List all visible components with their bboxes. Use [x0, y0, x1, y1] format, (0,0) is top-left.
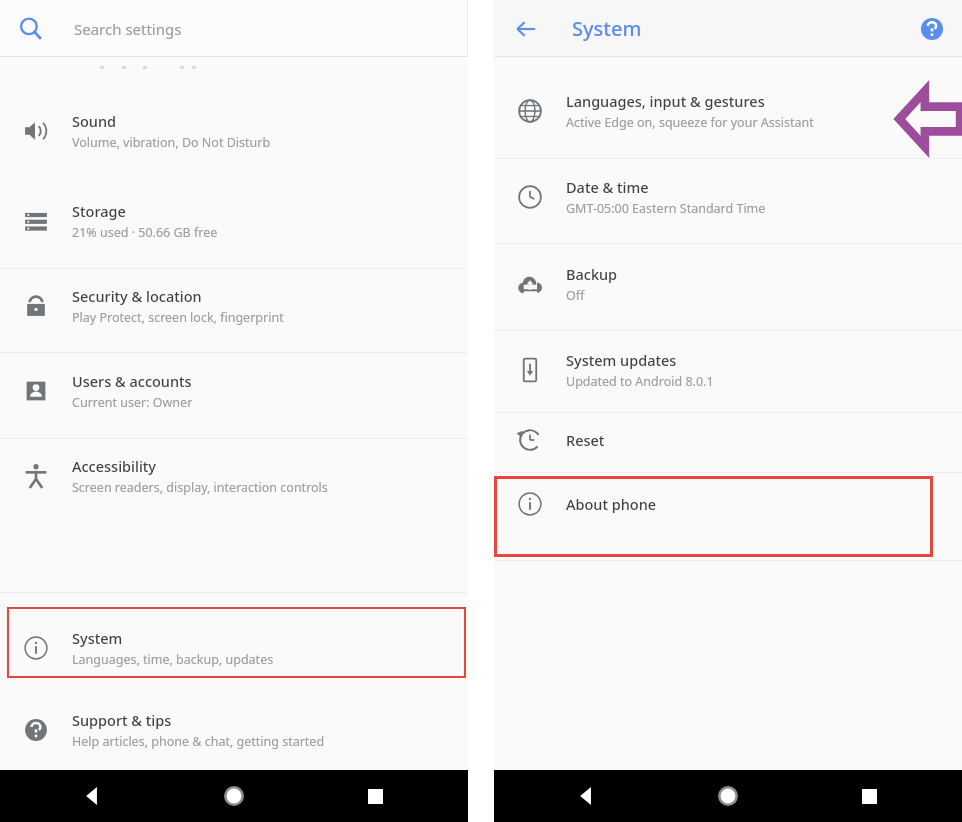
staticText: Volume, vibration, Do Not Disturb — [72, 134, 271, 151]
button[interactable]: Home — [705, 773, 751, 819]
button[interactable]: Sound — [0, 95, 468, 167]
staticText: Updated to Android 8.0.1 — [566, 373, 714, 390]
staticText: 21% used · 50.66 GB free — [72, 224, 218, 241]
staticText: About phone — [566, 494, 657, 514]
button[interactable]: About phone — [494, 476, 962, 532]
button[interactable]: Back — [564, 773, 610, 819]
button[interactable]: Security & location — [0, 270, 468, 342]
staticText: Users & accounts — [72, 371, 192, 391]
button[interactable]: Backup — [494, 248, 962, 320]
button[interactable]: System updates — [494, 334, 962, 406]
staticText: Languages, time, backup, updates — [72, 651, 274, 668]
staticText: Sound — [72, 111, 117, 131]
button[interactable]: Recents — [846, 773, 892, 819]
button[interactable]: Search settings — [0, 0, 468, 57]
staticText: Active Edge on, squeeze for your Assista… — [566, 114, 814, 131]
staticText: Support & tips — [72, 710, 172, 730]
button[interactable]: Storage — [0, 185, 468, 257]
button[interactable]: Languages, input & gestures — [494, 75, 962, 147]
staticText: Backup — [566, 264, 618, 284]
staticText: Security & location — [72, 286, 202, 306]
staticText: Play Protect, screen lock, fingerprint — [72, 309, 284, 326]
staticText: Screen readers, display, interaction con… — [72, 479, 328, 496]
button[interactable]: Home — [211, 773, 257, 819]
staticText: GMT-05:00 Eastern Standard Time — [566, 200, 766, 217]
button[interactable]: Accessibility — [0, 440, 468, 512]
button[interactable]: Support & tips — [0, 694, 468, 766]
button[interactable]: Recents — [352, 773, 398, 819]
staticText: Help articles, phone & chat, getting sta… — [72, 733, 325, 750]
button[interactable]: System — [0, 612, 468, 684]
staticText: System — [72, 628, 123, 648]
button[interactable]: Reset — [494, 412, 962, 468]
staticText: Off — [566, 287, 585, 304]
staticText: Languages, input & gestures — [566, 91, 765, 111]
staticText: Storage — [72, 201, 126, 221]
button[interactable]: Back — [504, 7, 548, 51]
staticText: Date & time — [566, 177, 649, 197]
staticText: System — [572, 15, 642, 42]
staticText: Accessibility — [72, 456, 157, 476]
staticText: Reset — [566, 430, 605, 450]
button[interactable]: Help — [912, 9, 952, 49]
staticText: Current user: Owner — [72, 394, 193, 411]
button[interactable]: Users & accounts — [0, 355, 468, 427]
button[interactable]: Date & time — [494, 161, 962, 233]
button[interactable]: Back — [70, 773, 116, 819]
staticText: Search settings — [74, 19, 182, 39]
staticText: System updates — [566, 350, 677, 370]
